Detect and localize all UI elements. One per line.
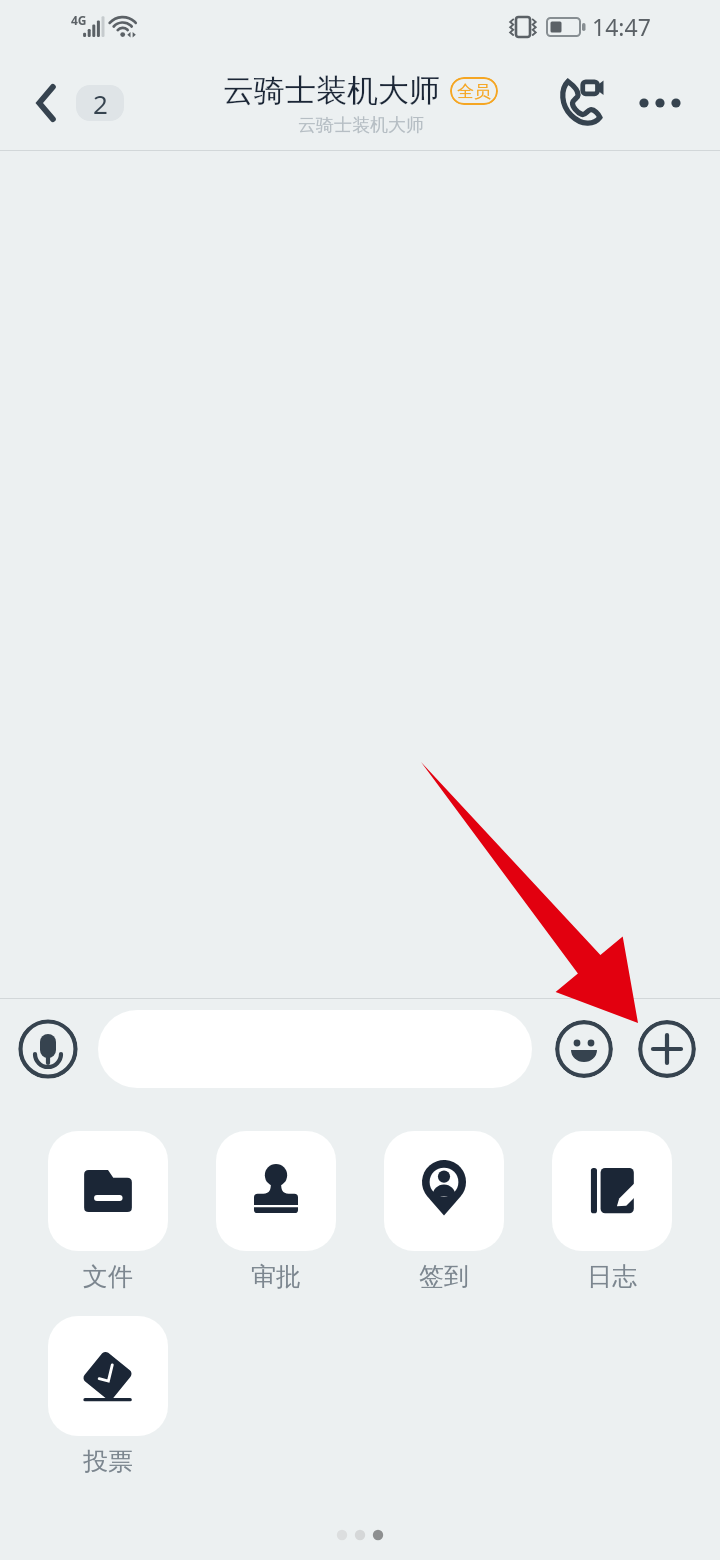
button[interactable]: Video call (546, 69, 614, 137)
button[interactable]: 日志 (552, 1131, 672, 1292)
button[interactable]: 投票 (48, 1316, 168, 1477)
button[interactable]: Voice message (18, 1019, 78, 1079)
button[interactable]: Back (24, 81, 124, 125)
staticText: 签到 (419, 1261, 469, 1292)
staticText: 4G (71, 12, 87, 28)
staticText: 14:47 (592, 11, 651, 42)
staticText: 全员 (457, 81, 491, 102)
staticText: 文件 (83, 1261, 133, 1292)
button[interactable]: 文件 (48, 1131, 168, 1292)
staticText: 审批 (251, 1261, 301, 1292)
staticText: 2 (93, 86, 108, 121)
button[interactable]: More options (634, 79, 686, 127)
staticText: 云骑士装机大师 (223, 71, 440, 110)
staticText: 日志 (587, 1261, 637, 1292)
staticText: 投票 (83, 1446, 133, 1477)
staticText: 云骑士装机大师 (298, 114, 424, 137)
button[interactable]: 签到 (384, 1131, 504, 1292)
button[interactable] (98, 1010, 532, 1088)
button[interactable]: More actions (638, 1020, 696, 1078)
button[interactable]: 审批 (216, 1131, 336, 1292)
button[interactable]: Emoji (555, 1020, 613, 1078)
